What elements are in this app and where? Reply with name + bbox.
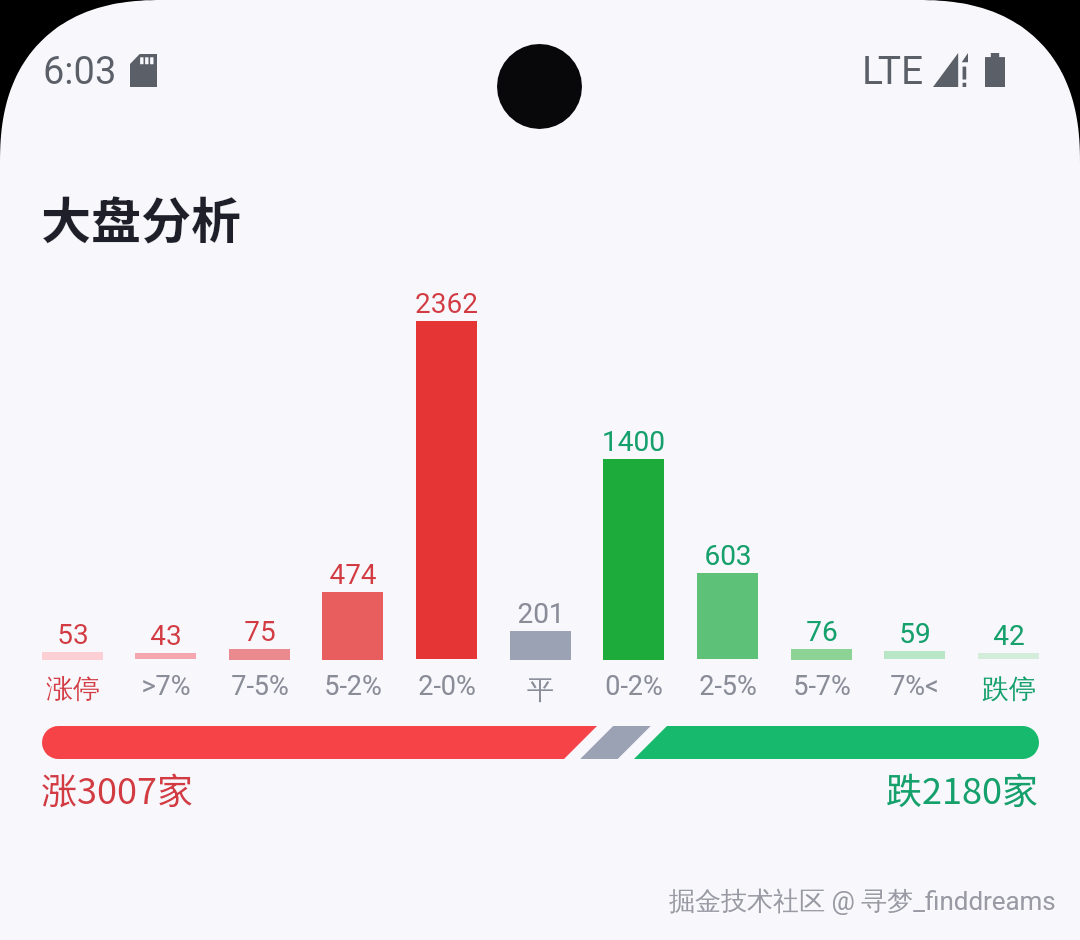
staticText: 75 [244,615,276,648]
staticText: 掘金技术社区 @ 寻梦_finddreams [669,885,1056,918]
button[interactable]: 跌停 42 [962,280,1055,710]
staticText: 2-5% [699,670,757,702]
staticText: 平 [527,673,554,707]
button[interactable]: 大盘分析 [42,178,262,258]
button[interactable]: 0-2% 1400 [587,280,680,710]
button[interactable]: 平 201 [494,280,587,710]
staticText: 43 [150,619,182,652]
staticText: 42 [993,619,1025,652]
other: SD card [130,54,157,87]
staticText: 76 [806,615,838,648]
other: Battery [985,53,1005,87]
button[interactable]: 7-5% 75 [213,280,306,710]
staticText: 跌2180家 [886,762,1038,814]
staticText: 2-0% [418,670,476,702]
staticText: 53 [57,618,89,651]
button[interactable]: 5-7% 76 [775,280,868,710]
staticText: 1400 [602,425,665,458]
staticText: 201 [517,597,565,630]
button[interactable]: 5-2% 474 [306,280,399,710]
button[interactable]: 涨跌比例 [42,726,1039,759]
button[interactable]: 2-0% 2362 [400,280,493,710]
button[interactable]: 7%< 59 [868,280,961,710]
staticText: 2362 [415,287,478,320]
staticText: 涨停 [46,672,100,706]
button[interactable]: >7% 43 [119,280,212,710]
staticText: 掘金技术社区 @ 寻梦_finddreams [670,886,1057,919]
staticText: 7%< [890,670,939,702]
other: Mobile signal [933,53,968,87]
button[interactable]: 2-5% 603 [681,280,774,710]
button[interactable]: 涨停 53 [26,280,119,710]
staticText: 大盘分析 [41,181,241,253]
staticText: LTE [862,48,924,94]
staticText: 6:03 [43,49,117,94]
staticText: 涨3007家 [41,762,193,814]
staticText: 59 [899,617,931,650]
staticText: 603 [704,539,752,572]
staticText: 跌停 [982,672,1036,706]
staticText: 474 [329,558,377,591]
staticText: 7-5% [231,670,289,702]
staticText: 0-2% [605,670,663,702]
staticText: 5-2% [324,670,382,702]
staticText: 5-7% [793,670,851,702]
staticText: >7% [141,670,191,702]
